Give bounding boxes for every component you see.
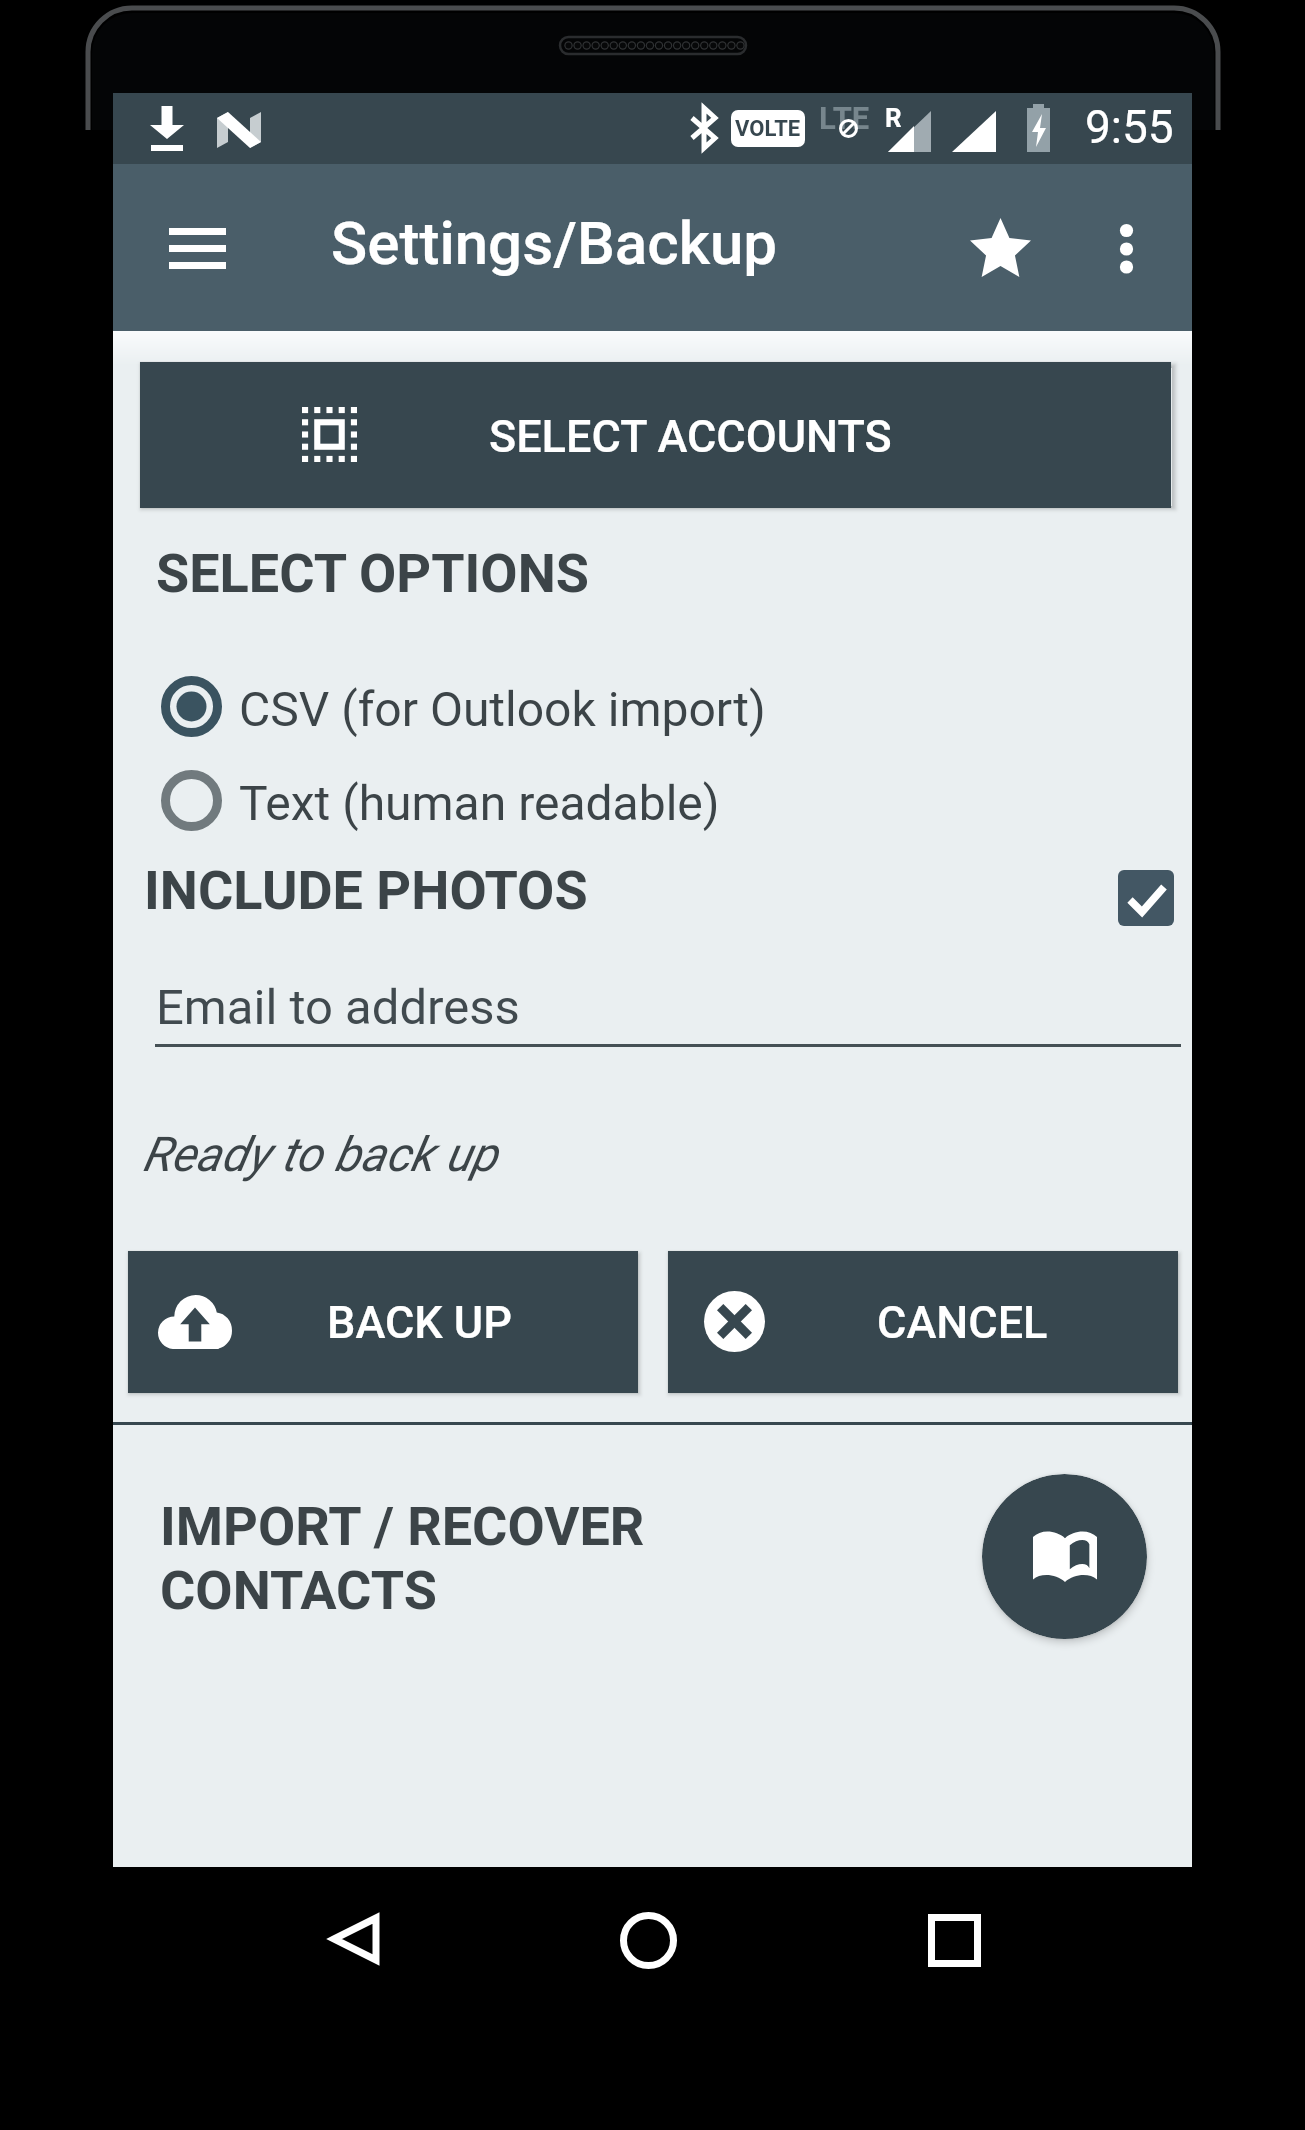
staticText: Text (human readable) xyxy=(239,775,720,831)
button[interactable]: CSV (for Outlook import) xyxy=(113,659,1192,753)
button[interactable]: Include photos xyxy=(1118,870,1174,926)
staticText: INCLUDE PHOTOS xyxy=(144,859,588,922)
staticText: SELECT ACCOUNTS xyxy=(489,410,892,463)
staticText: R xyxy=(885,103,902,133)
button[interactable]: IMPORT / RECOVER CONTACTS xyxy=(160,1495,645,1622)
button[interactable]: BACK UP xyxy=(128,1251,638,1393)
button[interactable]: Favorite xyxy=(945,193,1056,304)
button[interactable]: Recents xyxy=(878,1867,1030,2012)
staticText: SELECT OPTIONS xyxy=(156,542,590,605)
staticText: VOLTE xyxy=(735,116,801,142)
button[interactable]: Home xyxy=(576,1867,728,2012)
button[interactable]: Import contacts xyxy=(982,1474,1147,1639)
staticText: 9:55 xyxy=(1085,100,1174,154)
button[interactable]: CANCEL xyxy=(668,1251,1178,1393)
button[interactable]: More options xyxy=(1071,193,1182,304)
staticText: LTE xyxy=(819,100,870,136)
staticText: Settings/Backup xyxy=(331,208,778,278)
staticText: BACK UP xyxy=(327,1296,512,1349)
button[interactable]: SELECT ACCOUNTS xyxy=(140,362,1171,508)
button[interactable]: Text (human readable) xyxy=(113,753,1192,847)
button[interactable]: Menu xyxy=(131,192,263,303)
staticText: CSV (for Outlook import) xyxy=(239,681,766,737)
staticText: Ready to back up xyxy=(142,1126,497,1182)
button[interactable]: INCLUDE PHOTOS xyxy=(113,849,1192,937)
staticText: Email to address xyxy=(156,979,520,1036)
button[interactable]: Back xyxy=(275,1867,435,2012)
staticText: CANCEL xyxy=(877,1296,1048,1349)
button[interactable]: Email to address xyxy=(155,957,1181,1049)
